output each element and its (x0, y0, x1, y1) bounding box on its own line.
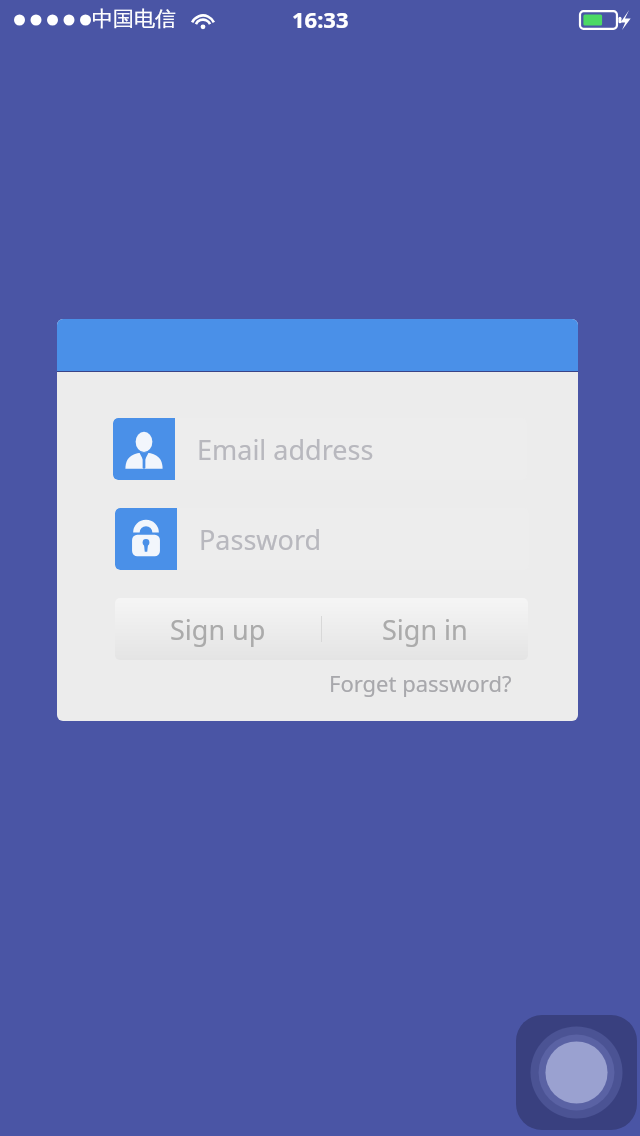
button[interactable]: Email address (113, 418, 527, 480)
staticText: 16:33 (292, 4, 349, 34)
button[interactable]: AssistiveTouch (516, 1015, 637, 1130)
staticText: Sign up (170, 611, 266, 648)
staticText: Sign in (382, 611, 468, 648)
staticText: 中国电信 (92, 6, 176, 32)
staticText: Email address (197, 431, 374, 468)
button[interactable]: Password (115, 508, 529, 570)
staticText: Password (199, 521, 322, 558)
button[interactable]: Sign up (115, 598, 321, 660)
staticText: Forget password? (329, 668, 512, 698)
button[interactable]: Forget password? (57, 668, 512, 698)
button[interactable]: Sign in (322, 598, 528, 660)
